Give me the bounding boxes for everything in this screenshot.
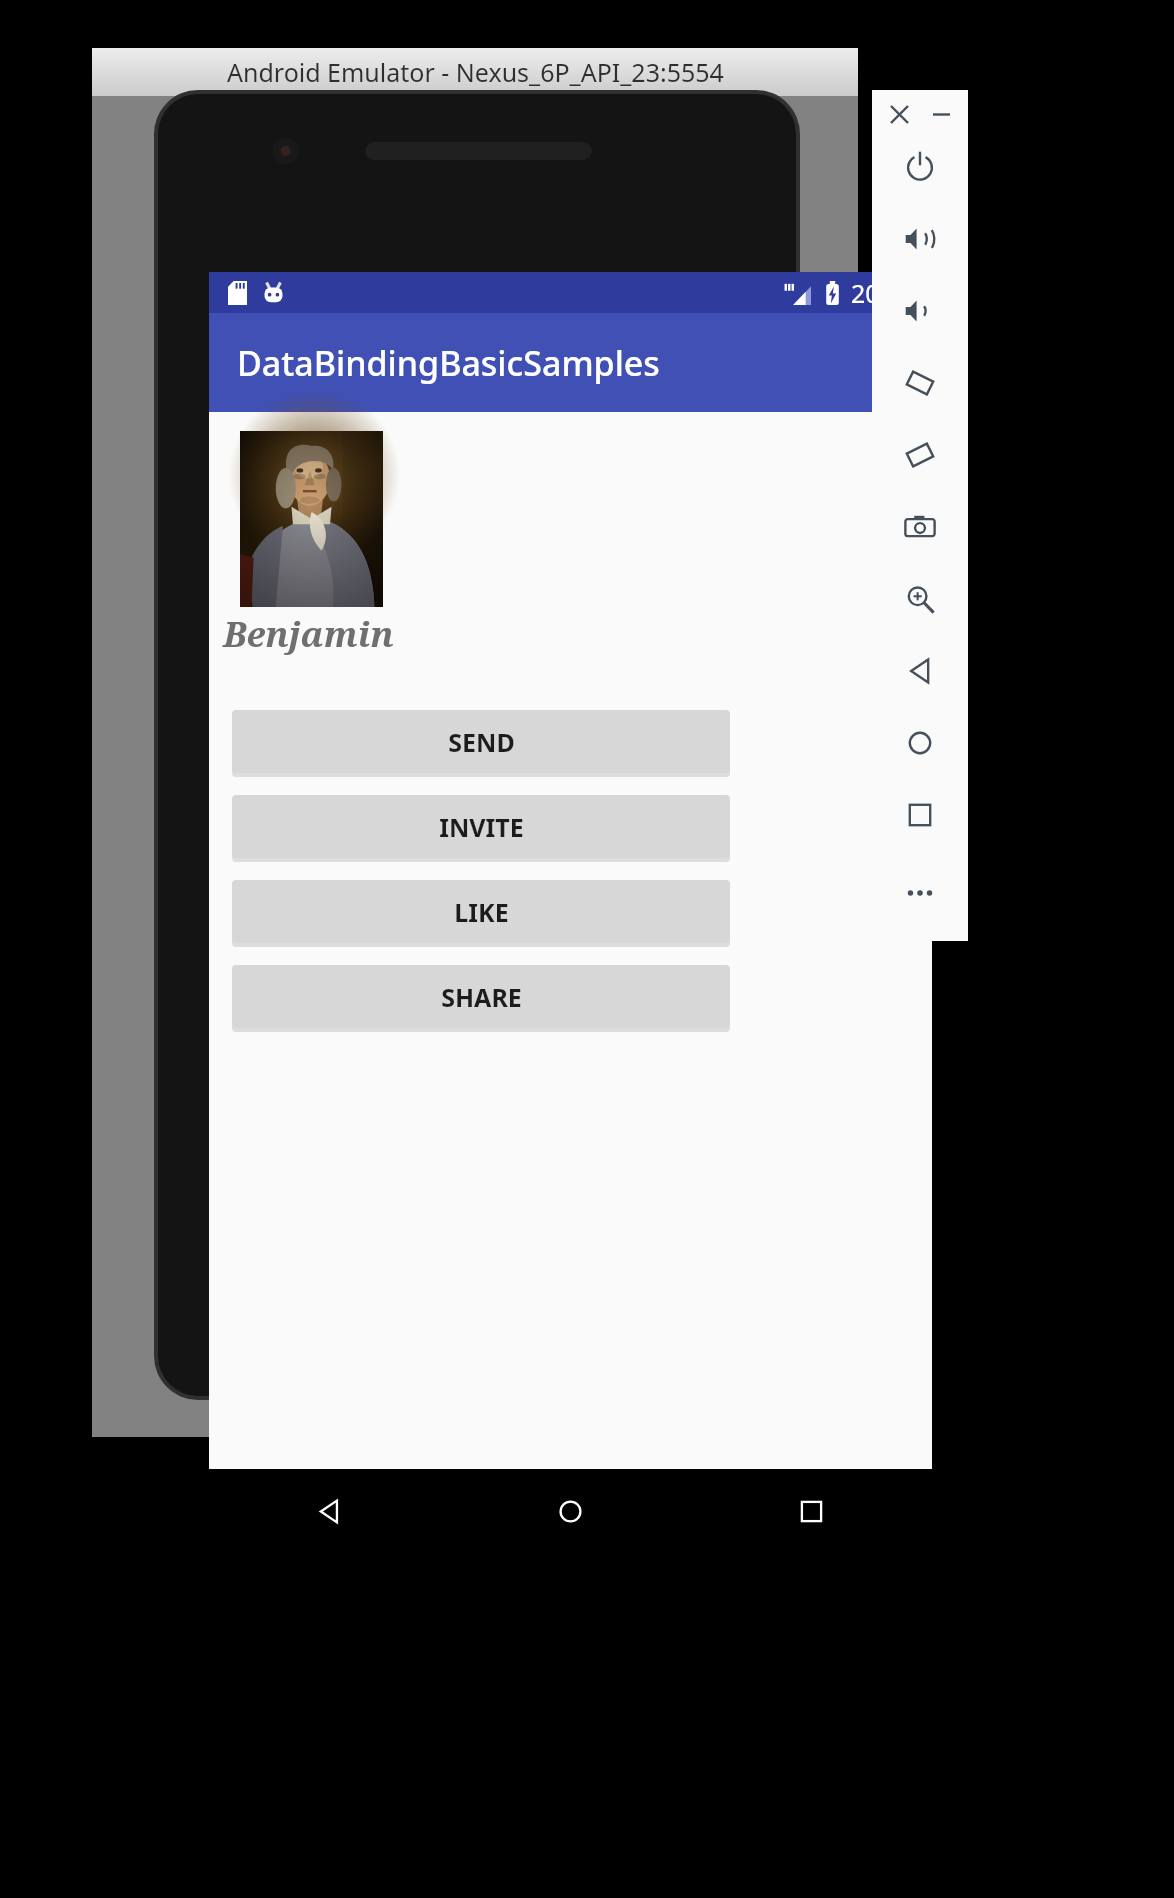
button[interactable]: Volume up: [895, 214, 945, 264]
staticText: LIKE: [454, 895, 509, 929]
button[interactable]: Zoom: [895, 574, 945, 624]
button[interactable]: Rotate left: [895, 358, 945, 408]
button[interactable]: Minimize: [925, 98, 957, 130]
button[interactable]: Home: [450, 1469, 691, 1553]
button[interactable]: INVITE: [232, 795, 730, 858]
button[interactable]: SHARE: [232, 965, 730, 1028]
button[interactable]: Power: [895, 142, 945, 192]
button[interactable]: Rotate right: [895, 430, 945, 480]
button[interactable]: Home: [895, 718, 945, 768]
button[interactable]: LIKE: [232, 880, 730, 943]
button[interactable]: Back: [209, 1469, 450, 1553]
button[interactable]: Take screenshot: [895, 502, 945, 552]
button[interactable]: Overview: [895, 790, 945, 840]
button[interactable]: More: [895, 868, 945, 918]
button[interactable]: Recent apps: [691, 1469, 932, 1553]
staticText: Benjamin: [223, 610, 394, 658]
button[interactable]: SEND: [232, 710, 730, 773]
staticText: SEND: [448, 725, 515, 759]
staticText: INVITE: [439, 810, 524, 844]
button[interactable]: Back: [895, 646, 945, 696]
button[interactable]: Volume down: [895, 286, 945, 336]
staticText: SHARE: [441, 980, 522, 1014]
staticText: 20:25: [851, 276, 915, 310]
staticText: Android Emulator - Nexus_6P_API_23:5554: [227, 55, 724, 89]
staticText: DataBindingBasicSamples: [237, 340, 660, 386]
button[interactable]: Close: [883, 98, 915, 130]
